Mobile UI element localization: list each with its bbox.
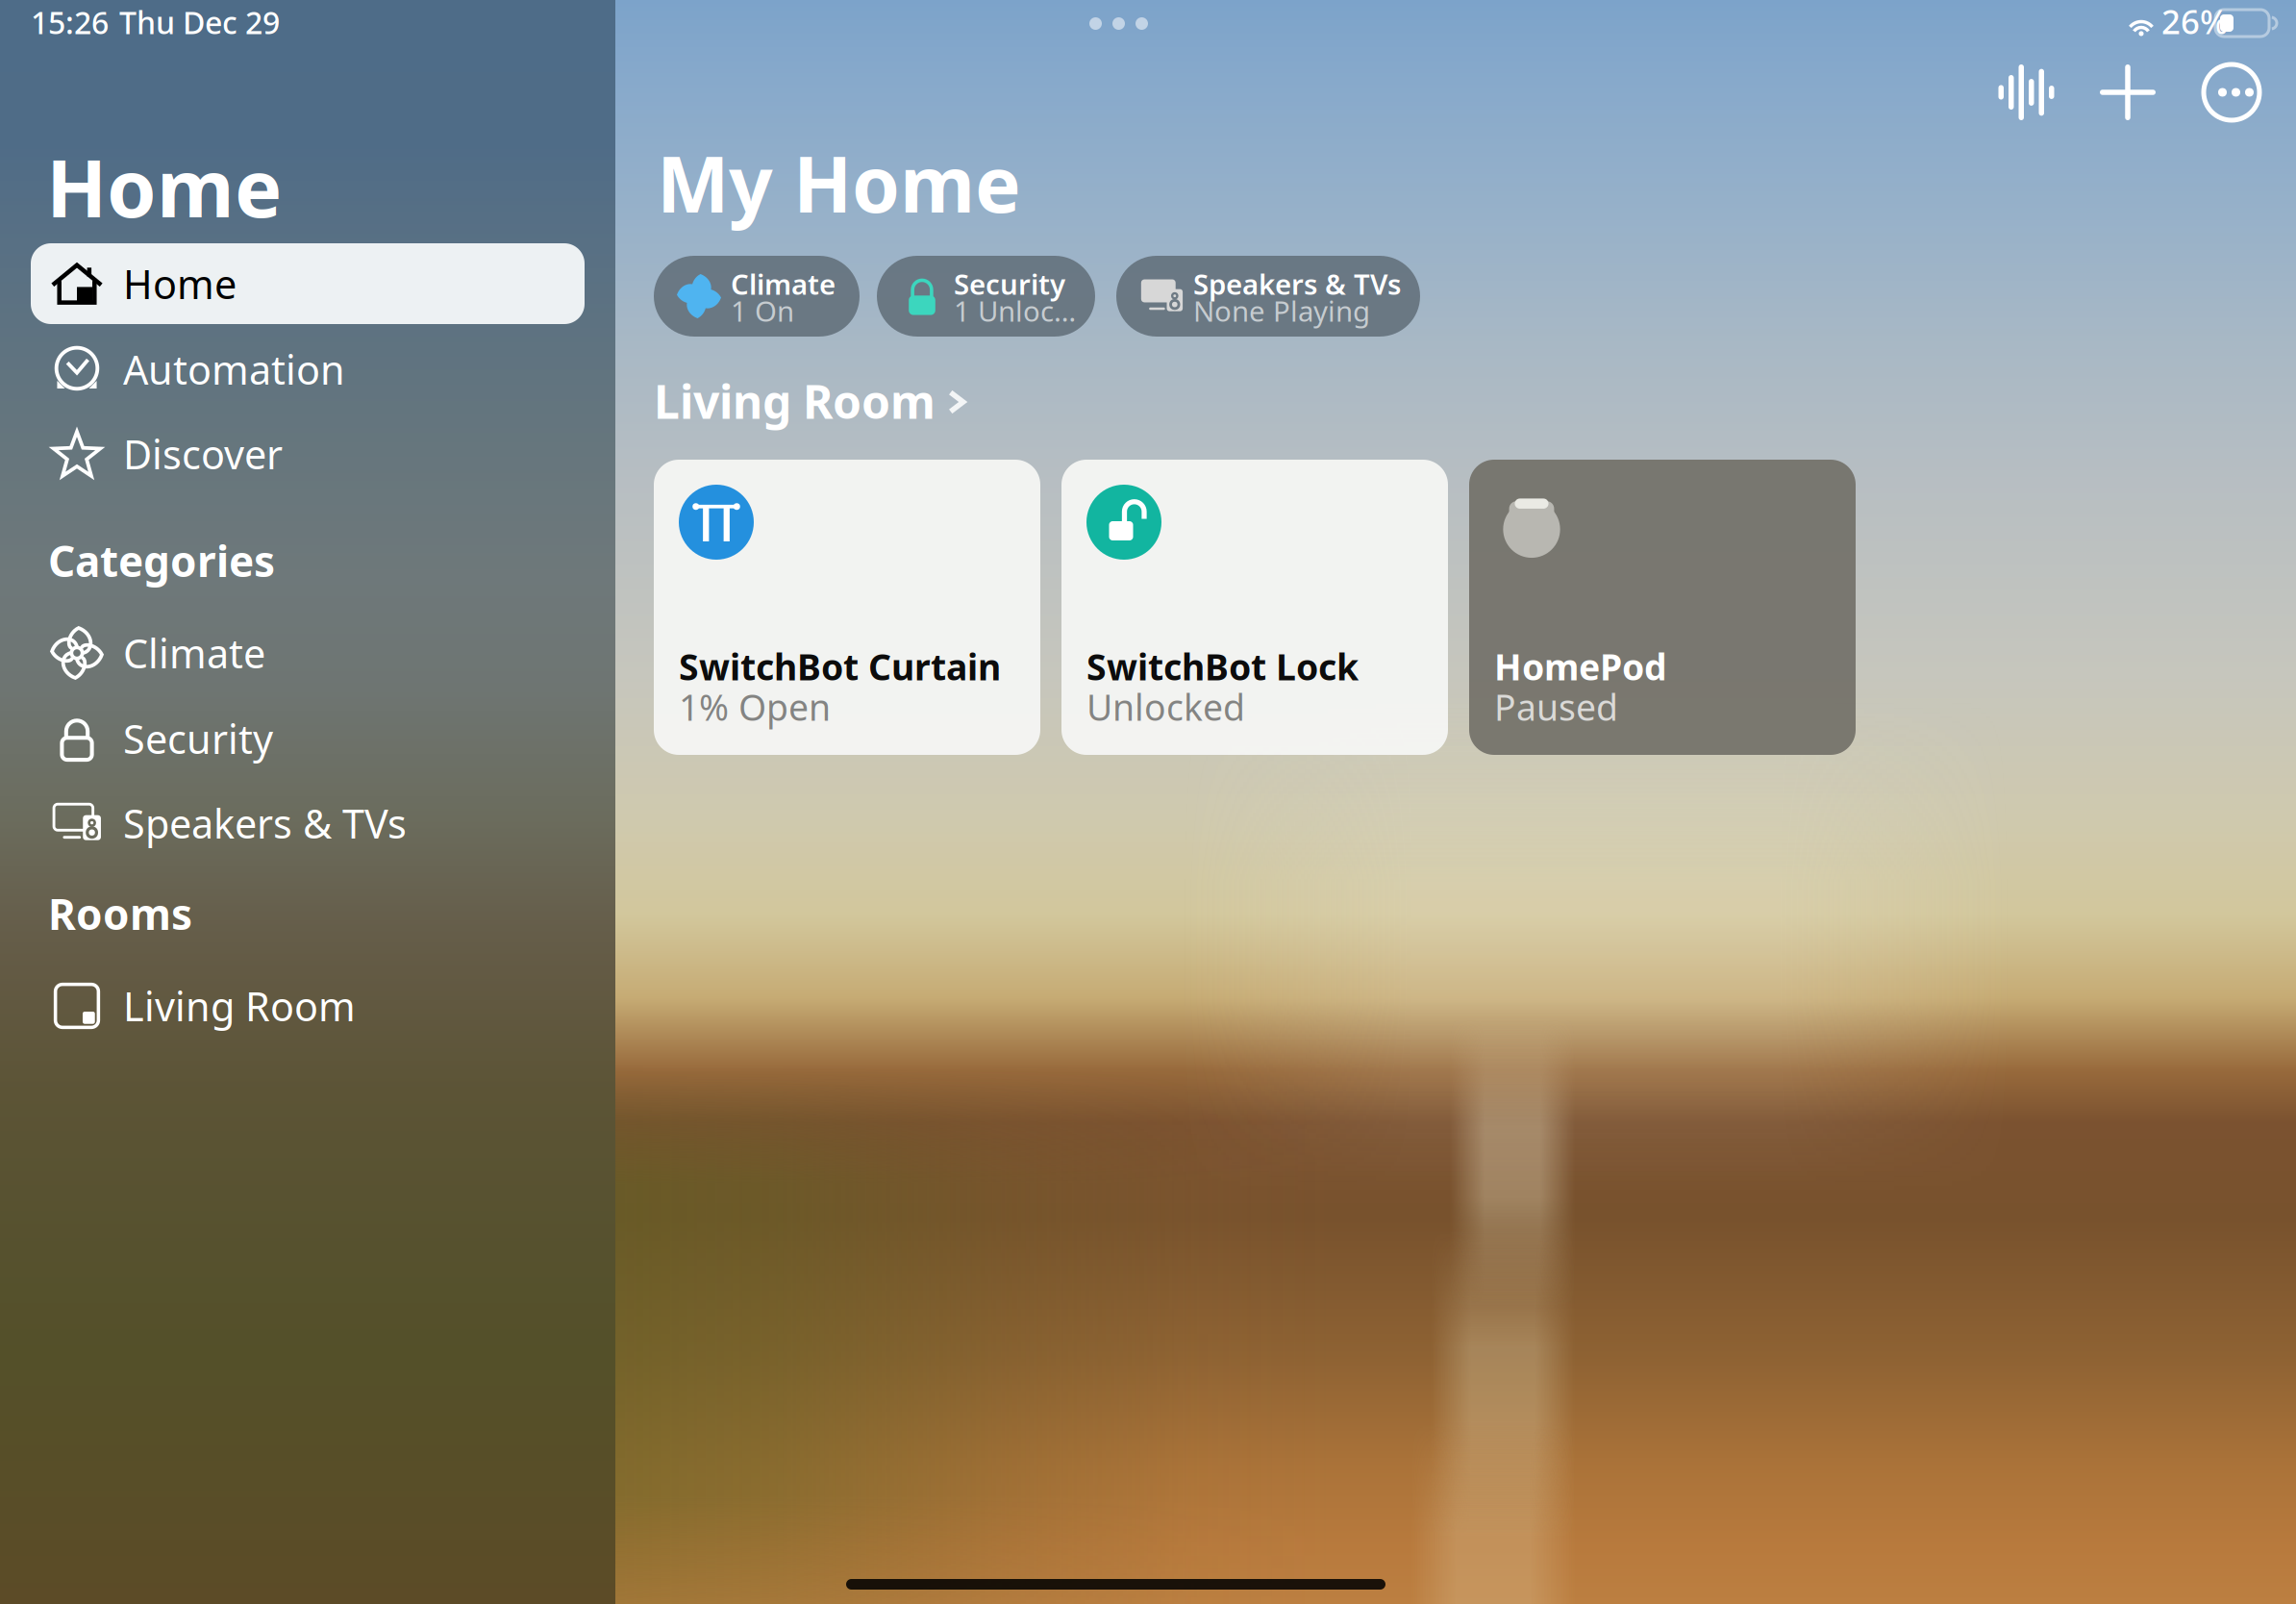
- button[interactable]: SwitchBot Curtain: [654, 460, 1040, 755]
- staticText: Home: [46, 134, 282, 239]
- staticText: Paused: [1494, 683, 1618, 731]
- button[interactable]: Speakers & TVs: [31, 783, 585, 864]
- button[interactable]: Automation: [31, 329, 585, 410]
- button[interactable]: Add: [2098, 64, 2158, 120]
- button[interactable]: Living Room: [31, 965, 585, 1046]
- staticText: 26%: [2161, 0, 2229, 43]
- staticText: Categories: [48, 533, 275, 589]
- button[interactable]: Media: [1993, 64, 2053, 120]
- staticText: Speakers & TVs: [1193, 265, 1401, 302]
- staticText: None Playing: [1193, 292, 1370, 329]
- staticText: 1 Unloc…: [954, 292, 1076, 329]
- button[interactable]: Security: [31, 698, 585, 779]
- staticText: HomePod: [1494, 643, 1667, 690]
- button[interactable]: HomePod: [1469, 460, 1856, 755]
- staticText: SwitchBot Lock: [1086, 643, 1359, 690]
- button[interactable]: SwitchBot Lock: [1061, 460, 1448, 755]
- button[interactable]: Living Room: [654, 377, 986, 425]
- staticText: Security: [123, 712, 273, 765]
- staticText: Climate: [731, 265, 836, 302]
- staticText: 15:26: [31, 2, 109, 43]
- button[interactable]: Speakers & TVs: [1116, 256, 1420, 337]
- staticText: Discover: [123, 428, 283, 480]
- staticText: Rooms: [48, 885, 192, 942]
- staticText: Living Room: [654, 370, 936, 432]
- staticText: Living Room: [123, 980, 356, 1032]
- staticText: Climate: [123, 627, 265, 679]
- staticText: Speakers & TVs: [123, 797, 407, 850]
- button[interactable]: Home: [31, 243, 585, 324]
- staticText: Unlocked: [1086, 683, 1245, 731]
- staticText: 1 On: [731, 292, 794, 329]
- staticText: Thu Dec 29: [119, 2, 280, 43]
- button[interactable]: Climate: [654, 256, 860, 337]
- button[interactable]: Security: [877, 256, 1095, 337]
- staticText: Security: [954, 265, 1065, 302]
- button[interactable]: Discover: [31, 414, 585, 494]
- button[interactable]: More: [2202, 64, 2261, 120]
- staticText: Home: [123, 257, 237, 310]
- staticText: My Home: [657, 132, 1021, 234]
- staticText: SwitchBot Curtain: [679, 643, 1001, 690]
- button[interactable]: Climate: [31, 613, 585, 693]
- staticText: Automation: [123, 343, 345, 396]
- staticText: 1% Open: [679, 683, 831, 731]
